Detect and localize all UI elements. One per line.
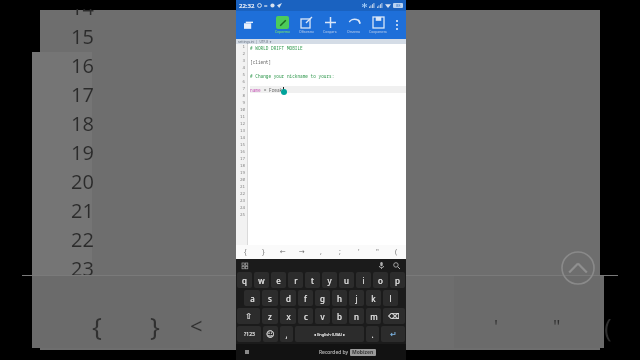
staticText: # WORLD DRIFT MOBILE [250,45,303,51]
button[interactable]: q [237,272,252,288]
staticText: 8 [242,93,245,100]
staticText: p [395,275,400,286]
button[interactable]: ← [273,245,292,259]
staticText: l [389,293,392,304]
staticText: h [337,293,342,304]
staticText: d [286,293,291,304]
button[interactable]: ⇧ [237,308,260,324]
staticText: 23 [71,255,94,282]
button[interactable]: → [292,245,311,259]
button[interactable]: o [373,272,388,288]
button[interactable]: d [280,290,296,306]
staticText: 14 [71,0,94,21]
staticText: 10 [239,107,245,114]
button[interactable]: s [262,290,278,306]
staticText: Freak [269,87,283,93]
button[interactable]: k [366,290,381,306]
button[interactable]: Создать [318,11,342,39]
staticText: name [250,87,261,93]
button[interactable]: More options [392,11,402,39]
button[interactable]: y [322,272,337,288]
staticText: ↵ [390,330,397,339]
staticText: } [150,308,160,343]
staticText: 88 [396,3,401,8]
button[interactable]: b [332,308,347,324]
button[interactable]: ⌫ [383,308,405,324]
staticText: 24 [239,205,245,212]
button[interactable]: , [280,326,293,342]
staticText: 22:32 [239,2,255,10]
button[interactable]: " [368,245,387,259]
staticText: q [242,275,247,286]
staticText: ; [339,247,341,257]
staticText: . [371,329,374,340]
button[interactable]: i [356,272,371,288]
staticText: 7 [242,86,245,93]
staticText: ' [358,247,360,257]
button[interactable]: h [332,290,347,306]
staticText: 21 [239,184,245,191]
button[interactable]: j [349,290,364,306]
staticText: 13 [239,128,245,135]
staticText: z [268,311,272,322]
button[interactable]: Files [240,17,256,33]
button[interactable]: m [366,308,381,324]
staticText: , [320,247,322,257]
button[interactable]: e [271,272,286,288]
staticText: r [294,275,298,286]
button[interactable]: } [254,245,273,259]
button[interactable]: l [383,290,398,306]
button[interactable]: { [236,245,254,259]
button[interactable]: v [315,308,330,324]
button[interactable]: w [254,272,269,288]
staticText: = [264,2,268,10]
button[interactable]: ◂ English (USA) ▸ [295,326,364,342]
staticText: Создать [323,29,337,34]
staticText: → [299,248,305,256]
staticText: m [370,311,378,322]
button[interactable]: ?123 [237,326,261,342]
staticText: o [378,275,383,286]
button[interactable]: Сохранить [366,11,390,39]
staticText: 9 [242,100,245,107]
button[interactable]: a [244,290,260,306]
staticText: 15 [71,23,94,50]
button[interactable]: Voice input [377,261,386,270]
button[interactable]: t [305,272,320,288]
button[interactable]: ☺ [263,326,278,342]
staticText: a [250,293,255,304]
button[interactable]: g [315,290,330,306]
button[interactable]: Отмена [342,11,366,39]
button[interactable]: x [280,308,296,324]
button[interactable]: n [349,308,364,324]
button[interactable]: u [339,272,354,288]
button[interactable]: ; [330,245,349,259]
staticText: = [261,87,269,93]
staticText: i [362,275,365,286]
button[interactable]: Search [392,261,401,270]
button[interactable]: Скрипты [270,11,294,39]
button[interactable]: Recents [242,347,252,357]
staticText: Сохранить [369,29,387,34]
button[interactable]: ( [387,245,406,259]
button[interactable]: Scroll up [561,251,595,285]
button[interactable]: , [311,245,330,259]
button[interactable]: ↵ [381,326,405,342]
staticText: 3 [242,58,245,65]
button[interactable]: Объекты [294,11,318,39]
button[interactable]: c [298,308,313,324]
staticText: ← [280,248,286,256]
button[interactable]: f [298,290,313,306]
staticText: x [286,311,291,322]
button[interactable]: . [366,326,379,342]
button[interactable]: z [262,308,278,324]
staticText: b [337,311,342,322]
button[interactable]: r [288,272,303,288]
staticText: 4 [242,65,245,72]
staticText: ( [395,247,398,257]
button[interactable]: p [390,272,405,288]
button[interactable]: ' [349,245,368,259]
staticText: { [92,308,102,343]
staticText: 5 [242,72,245,79]
button[interactable]: Keyboard modes [241,262,249,270]
